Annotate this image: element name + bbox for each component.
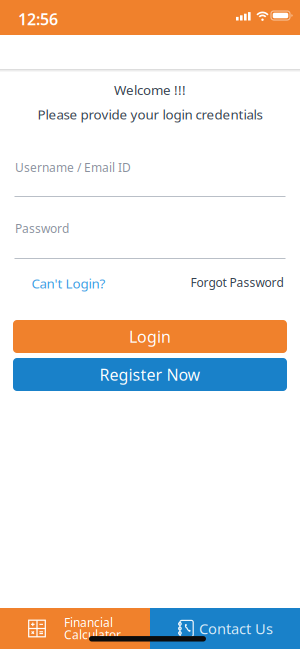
staticText: Financial [64,614,113,630]
staticText: Login [129,326,171,347]
staticText: Register Now [99,364,200,385]
staticText: Contact Us [199,619,273,638]
staticText: 12:56 [18,8,58,30]
staticText: Username / Email ID [15,159,131,175]
staticText: Forgot Password [191,274,284,290]
staticText: Welcome !!! [114,81,186,99]
button[interactable]: Forgot Password [0,274,284,290]
staticText: Password [15,220,69,236]
button[interactable]: Register Now [13,358,287,391]
staticText: Calculator [64,627,121,643]
staticText: Can't Login? [31,274,105,292]
button[interactable]: Financial [0,608,150,649]
button[interactable]: Login [13,320,287,353]
staticText: Please provide your login credentials [37,105,262,123]
button[interactable]: Contact Us [150,608,300,649]
button[interactable]: Can't Login? [31,274,105,292]
